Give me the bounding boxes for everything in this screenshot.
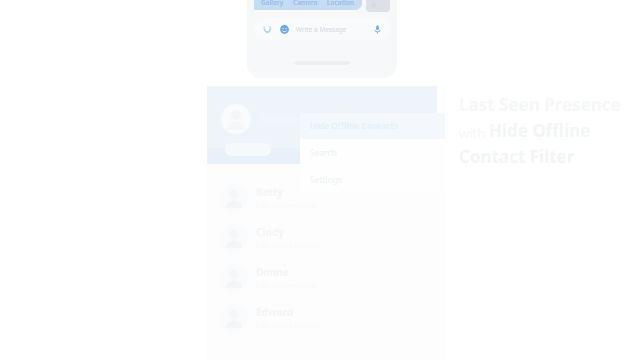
staticText: Last Seen Presence [459, 93, 621, 116]
button[interactable]: Attach file [261, 18, 383, 40]
staticText: Location [327, 0, 355, 7]
button[interactable]: Emoji [278, 23, 290, 35]
staticText: Donna [256, 265, 289, 279]
staticText: Cindy [256, 225, 284, 239]
staticText: Settings [310, 174, 343, 186]
staticText: with [459, 124, 489, 142]
staticText: Search [310, 147, 337, 159]
staticText: Gallery [261, 0, 284, 7]
button[interactable]: Voice message [371, 23, 383, 35]
staticText: Edward [256, 305, 294, 319]
button[interactable]: Gallery [261, 0, 355, 7]
staticText: Hide Offline [489, 119, 591, 142]
staticText: Write a Message [296, 25, 347, 34]
button[interactable]: Attach file [261, 23, 273, 35]
staticText: Betty [256, 185, 284, 199]
staticText: Camera [293, 0, 318, 7]
staticText: Contact Filter [459, 145, 575, 168]
staticText: Hide Offline Contacts [310, 120, 399, 132]
